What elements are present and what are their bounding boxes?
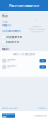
- button[interactable]: Определить: [2, 35, 22, 39]
- staticText: Тип чек: [2, 45, 8, 47]
- staticText: ок: [36, 19, 38, 21]
- staticText: Выделить: [6, 40, 19, 43]
- staticText: OK: [42, 66, 44, 68]
- staticText: Отменить: [34, 114, 46, 117]
- staticText: Документ 1: [8, 59, 17, 61]
- button[interactable]: Выделить: [2, 40, 19, 43]
- staticText: Этап:: [2, 20, 9, 23]
- staticText: Распознавание: [9, 3, 39, 8]
- staticText: Проверьте: [32, 26, 41, 27]
- button[interactable]: OK: [39, 59, 46, 62]
- staticText: Макрос: [2, 24, 11, 27]
- staticText: Нов: [2, 14, 8, 18]
- staticText: МОЛТ: [2, 47, 9, 51]
- staticText: Все файлы: [38, 107, 46, 109]
- staticText: перед печатью: [31, 31, 43, 33]
- staticText: Определить: [6, 35, 22, 39]
- button[interactable]: OK: [39, 65, 46, 69]
- staticText: OK: [42, 60, 44, 62]
- staticText: Обработать: [2, 112, 15, 119]
- staticText: Пользователь: [2, 29, 20, 33]
- button[interactable]: Обработать: [2, 113, 15, 118]
- staticText: верность операции: [29, 28, 45, 30]
- staticText: pdf: [8, 61, 10, 63]
- staticText: Добавить документ: [2, 107, 18, 109]
- staticText: Статус: [2, 12, 8, 14]
- staticText: Файл не загружен: [12, 52, 35, 56]
- staticText: Документ 2: [8, 65, 17, 67]
